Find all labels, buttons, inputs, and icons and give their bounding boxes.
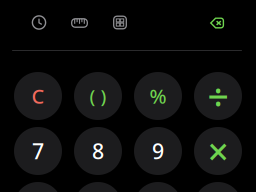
- button[interactable]: Delete: [210, 17, 225, 29]
- staticText: C: [31, 83, 44, 109]
- staticText: ÷: [207, 71, 228, 121]
- staticText: −: [207, 181, 228, 192]
- staticText: ( ): [89, 84, 106, 108]
- button[interactable]: −: [194, 182, 242, 192]
- button[interactable]: 4: [14, 182, 62, 192]
- button[interactable]: Calculator: [113, 15, 127, 29]
- staticText: 9: [152, 137, 164, 165]
- button[interactable]: 5: [74, 182, 122, 192]
- staticText: %: [149, 83, 166, 109]
- button[interactable]: C: [14, 72, 62, 120]
- staticText: 7: [32, 137, 44, 165]
- button[interactable]: 7: [14, 127, 62, 175]
- button[interactable]: History: [31, 15, 46, 30]
- button[interactable]: 9: [134, 127, 182, 175]
- button[interactable]: Unit converter: [71, 18, 88, 28]
- button[interactable]: ( ): [74, 72, 122, 120]
- button[interactable]: ÷: [194, 72, 242, 120]
- staticText: ×: [207, 126, 228, 176]
- staticText: 8: [92, 137, 104, 165]
- button[interactable]: ×: [194, 127, 242, 175]
- button[interactable]: 8: [74, 127, 122, 175]
- button[interactable]: %: [134, 72, 182, 120]
- button[interactable]: 6: [134, 182, 182, 192]
